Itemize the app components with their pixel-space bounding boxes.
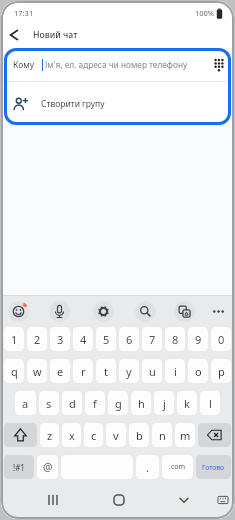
button[interactable]: 9 [188,327,208,351]
button[interactable]: l [200,391,220,415]
button[interactable] [208,301,229,322]
button[interactable]: i [165,359,185,383]
button[interactable]: s [39,391,59,415]
staticText: Ім'я, ел. адреса чи номер телефону [45,59,188,70]
button[interactable]: w [27,359,47,383]
button[interactable]: 3 [50,327,70,351]
staticText: c [91,428,97,443]
staticText: x [69,428,75,443]
staticText: p [218,364,225,379]
button[interactable]: k [177,391,197,415]
button[interactable]: 6 [119,327,139,351]
staticText: 8 [172,332,179,347]
button[interactable]: d [62,391,82,415]
staticText: 0 [218,332,225,347]
button[interactable] [49,301,70,322]
staticText: n [159,428,166,443]
button[interactable]: Готово [196,455,231,479]
staticText: 2 [34,332,41,347]
staticText: 7 [149,332,156,347]
button[interactable]: p [211,359,231,383]
button[interactable]: g [108,391,128,415]
button[interactable]: 1 [4,327,24,351]
button[interactable]: z [40,423,59,447]
button[interactable]: 5 [96,327,116,351]
button[interactable]: n [152,423,172,447]
button[interactable]: f [85,391,105,415]
staticText: 5 [103,332,110,347]
button[interactable]: j [154,391,174,415]
button[interactable]: 8 [165,327,185,351]
button[interactable] [8,301,29,322]
staticText: f [93,396,97,411]
button[interactable]: 2 [27,327,47,351]
button[interactable]: 7 [142,327,162,351]
staticText: j [163,396,166,411]
staticText: q [11,364,18,379]
button[interactable]: Створити групу [4,82,231,125]
button[interactable] [198,423,231,447]
button[interactable]: t [96,359,116,383]
staticText: w [33,364,42,379]
button[interactable]: u [142,359,162,383]
staticText: u [149,364,156,379]
button[interactable] [174,301,195,322]
button[interactable] [213,58,225,72]
button[interactable]: q [4,359,24,383]
staticText: 6 [126,332,133,347]
staticText: 9 [195,332,202,347]
staticText: 100% [195,8,215,18]
staticText: .com [169,462,186,472]
button[interactable]: o [188,359,208,383]
staticText: b [136,428,143,443]
button[interactable]: h [131,391,151,415]
staticText: Новий чат [33,29,78,41]
staticText: !#1 [13,462,25,473]
button[interactable]: !#1 [4,455,34,479]
staticText: a [22,396,29,411]
button[interactable]: c [84,423,103,447]
button[interactable] [171,487,197,513]
button[interactable]: y [119,359,139,383]
staticText: Створити групу [41,98,105,110]
staticText: s [46,396,52,411]
button[interactable]: 4 [73,327,93,351]
staticText: i [174,364,177,379]
staticText: y [126,364,132,379]
button[interactable]: v [106,423,126,447]
button[interactable] [1,24,27,45]
staticText: 3 [57,332,64,347]
staticText: r [81,364,86,379]
staticText: 4 [80,332,87,347]
staticText: l [209,396,212,411]
staticText: . [146,460,149,475]
staticText: t [104,364,108,379]
button[interactable] [4,423,37,447]
button[interactable]: b [129,423,149,447]
staticText: Кому [13,59,35,71]
button[interactable]: Кому [4,48,231,81]
staticText: e [57,364,64,379]
staticText: 1 [11,332,18,347]
staticText: 17:31 [14,8,34,18]
button[interactable]: @ [37,455,58,479]
button[interactable]: a [15,391,36,415]
button[interactable]: . [136,455,159,479]
button[interactable] [40,487,66,513]
staticText: Готово [202,463,225,472]
button[interactable] [93,301,114,322]
button[interactable]: x [62,423,81,447]
button[interactable] [135,301,156,322]
button[interactable]: .com [162,455,193,479]
button[interactable]: 0 [211,327,231,351]
button[interactable] [106,487,132,513]
staticText: m [180,428,191,443]
button[interactable]: r [73,359,93,383]
button[interactable]: m [175,423,195,447]
button[interactable]: e [50,359,70,383]
staticText: d [69,396,76,411]
button[interactable] [212,489,234,511]
staticText: @ [43,460,53,474]
